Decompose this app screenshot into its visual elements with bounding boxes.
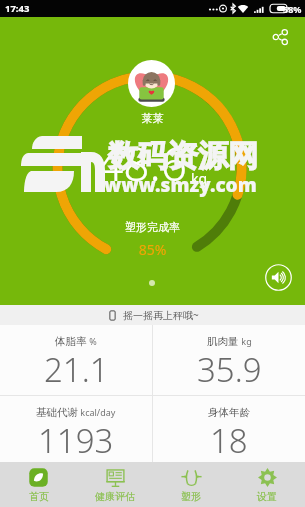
staticText: 塑形 — [181, 490, 201, 503]
button[interactable]: Share — [268, 23, 295, 50]
staticText: 莱莱 — [0, 111, 305, 125]
staticText: 17:43 — [5, 2, 30, 15]
button[interactable]: 摇一摇再上秤哦~ — [0, 305, 305, 325]
button[interactable]: 肌肉量 — [153, 325, 305, 395]
staticText: 21.1 — [44, 347, 109, 392]
staticText: 18 — [210, 418, 248, 463]
staticText: 设置 — [257, 490, 277, 503]
button[interactable]: 身体年龄 — [153, 396, 305, 462]
staticText: 数码资源网 — [108, 137, 258, 175]
button[interactable]: Sound — [264, 263, 293, 292]
button[interactable]: 基础代谢 — [0, 396, 152, 462]
staticText: www.smzy.com — [104, 172, 257, 198]
button[interactable]: 塑形 — [153, 462, 229, 507]
button[interactable]: 首页 — [0, 462, 77, 507]
staticText: 48.6 — [97, 132, 188, 195]
button[interactable]: 设置 — [229, 462, 305, 507]
staticText: 身体年龄 — [208, 406, 250, 419]
staticText: kg — [191, 169, 208, 188]
staticText: 健康评估 — [95, 490, 135, 503]
staticText: 摇一摇再上秤哦~ — [123, 308, 199, 322]
staticText: 1193 — [38, 418, 114, 463]
staticText: kg — [239, 335, 252, 347]
staticText: % — [87, 335, 97, 347]
staticText: 85% — [0, 240, 305, 259]
button[interactable]: 健康评估 — [77, 462, 153, 507]
staticText: kcal/day — [78, 406, 116, 418]
staticText: 首页 — [29, 490, 49, 503]
staticText: 塑形完成率 — [0, 220, 305, 234]
staticText: 58% — [283, 3, 302, 15]
staticText: 35.9 — [197, 347, 262, 392]
staticText: 肌肉量 — [207, 335, 239, 348]
button[interactable]: Profile avatar — [128, 60, 175, 107]
staticText: 体脂率 — [55, 335, 87, 348]
button[interactable]: 体脂率 — [0, 325, 152, 395]
staticText: 基础代谢 — [36, 406, 78, 419]
